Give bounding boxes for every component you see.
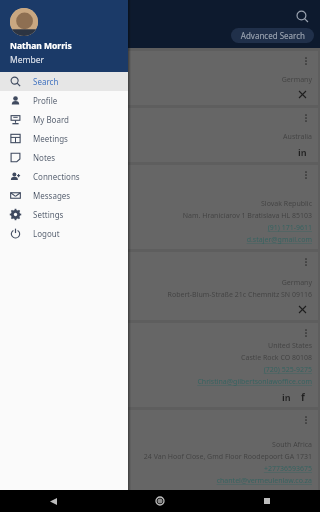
button[interactable]: More options [300,112,312,124]
button[interactable]: X profile [296,303,309,316]
button[interactable]: My Board [0,110,128,129]
staticText: Search [33,76,59,87]
staticText: Nathan Morris [10,40,72,52]
staticText: in [282,391,291,403]
button[interactable]: Profile photo [10,8,38,36]
button[interactable]: More options [300,327,312,339]
staticText: Australia [283,132,312,142]
button[interactable]: Search [290,4,314,28]
button[interactable]: More options [300,256,312,268]
button[interactable]: Profile [0,91,128,110]
staticText: Slovak Republic [261,199,312,209]
staticText: Nam. Hranicíarov 1 Bratislava HL 85103 [182,211,312,221]
staticText: f [301,390,305,403]
staticText: Member [10,54,44,66]
button[interactable]: More options [300,169,312,181]
button[interactable]: Facebook profile [296,390,309,403]
button[interactable]: Logout [0,224,128,243]
button[interactable]: X profile [296,88,309,101]
button[interactable]: More options [300,55,312,67]
staticText: chantel@vermeulenlaw.co.za [216,476,312,486]
staticText: Profile [33,95,58,106]
staticText: Germany [281,75,312,85]
staticText: in [298,146,307,158]
button[interactable]: Recent apps [256,490,278,512]
staticText: Robert-Blum-Straße 21c Chemnitz SN 09116 [167,290,312,300]
button[interactable]: Advanced Search [231,28,314,43]
staticText: Christina@gilbertsonlawoffice.com [197,377,312,387]
button[interactable]: Search [0,72,128,91]
button[interactable]: More options [1,108,318,162]
staticText: Advanced Search [240,30,305,41]
button[interactable]: Settings [0,205,128,224]
staticText: Settings [33,209,64,220]
staticText: 24 Van Hoof Close, Gmd Floor Roodepoort … [143,452,312,462]
staticText: United States [268,341,312,351]
staticText: Meetings [33,133,68,144]
button[interactable]: Connections [0,167,128,186]
staticText: Logout [33,228,60,239]
button[interactable]: More options [1,51,318,105]
button[interactable]: Home [149,490,171,512]
staticText: (91) 171-9611 [267,223,312,233]
staticText: My Board [33,114,70,125]
staticText: Notes [33,152,56,163]
button[interactable]: LinkedIn profile [280,390,293,403]
staticText: d.stajer@gmail.com [246,235,312,245]
button[interactable]: Back [42,490,64,512]
button[interactable]: Notes [0,148,128,167]
staticText: Connections [33,171,80,182]
staticText: South Africa [272,440,312,450]
button[interactable]: More options [1,252,318,320]
button[interactable]: More options [300,414,312,426]
staticText: Castle Rock CO 80108 [241,353,312,363]
staticText: Germany [281,278,312,288]
button[interactable]: More options [1,323,318,407]
button[interactable]: More options [1,410,318,490]
staticText: Messages [33,190,71,201]
button[interactable]: More options [1,165,318,249]
button[interactable]: Messages [0,186,128,205]
button[interactable]: LinkedIn profile [296,145,309,158]
staticText: +27736593675 [263,464,312,474]
button[interactable]: Meetings [0,129,128,148]
staticText: (720) 525-9275 [263,365,312,375]
